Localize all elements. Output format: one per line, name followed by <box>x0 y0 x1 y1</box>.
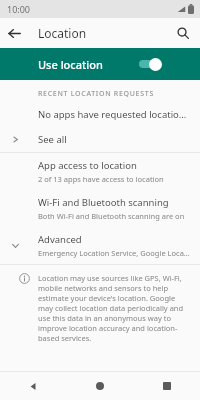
button[interactable]: See all <box>0 126 200 152</box>
staticText: Use location <box>38 57 103 72</box>
staticText: 10:00 <box>7 3 31 15</box>
staticText: 2 of 13 apps have access to location <box>38 174 164 184</box>
button[interactable]: App access to location <box>0 153 200 190</box>
button[interactable]: No apps have requested location recently <box>0 102 200 126</box>
button[interactable]: Recent apps <box>133 372 200 400</box>
button[interactable]: Use location <box>0 48 200 80</box>
staticText: Location may use sources like GPS, Wi-Fi… <box>38 273 190 343</box>
button[interactable]: Search <box>170 20 196 46</box>
staticText: Emergency Location Service, Google Locat… <box>38 248 192 258</box>
staticText: Both Wi-Fi and Bluetooth scanning are on <box>38 211 185 221</box>
staticText: Wi-Fi and Bluetooth scanning <box>38 196 169 209</box>
staticText: App access to location <box>38 159 137 172</box>
button[interactable]: Home <box>66 372 133 400</box>
staticText: Advanced <box>38 233 82 246</box>
button[interactable]: Wi-Fi and Bluetooth scanning <box>0 190 200 227</box>
button[interactable]: Back <box>0 19 28 47</box>
staticText: No apps have requested location recently <box>38 108 192 121</box>
button[interactable]: Back <box>0 372 66 400</box>
staticText: See all <box>38 133 67 146</box>
button[interactable]: Advanced <box>0 227 200 264</box>
staticText: Location <box>38 25 87 41</box>
staticText: RECENT LOCATION REQUESTS <box>38 89 154 99</box>
